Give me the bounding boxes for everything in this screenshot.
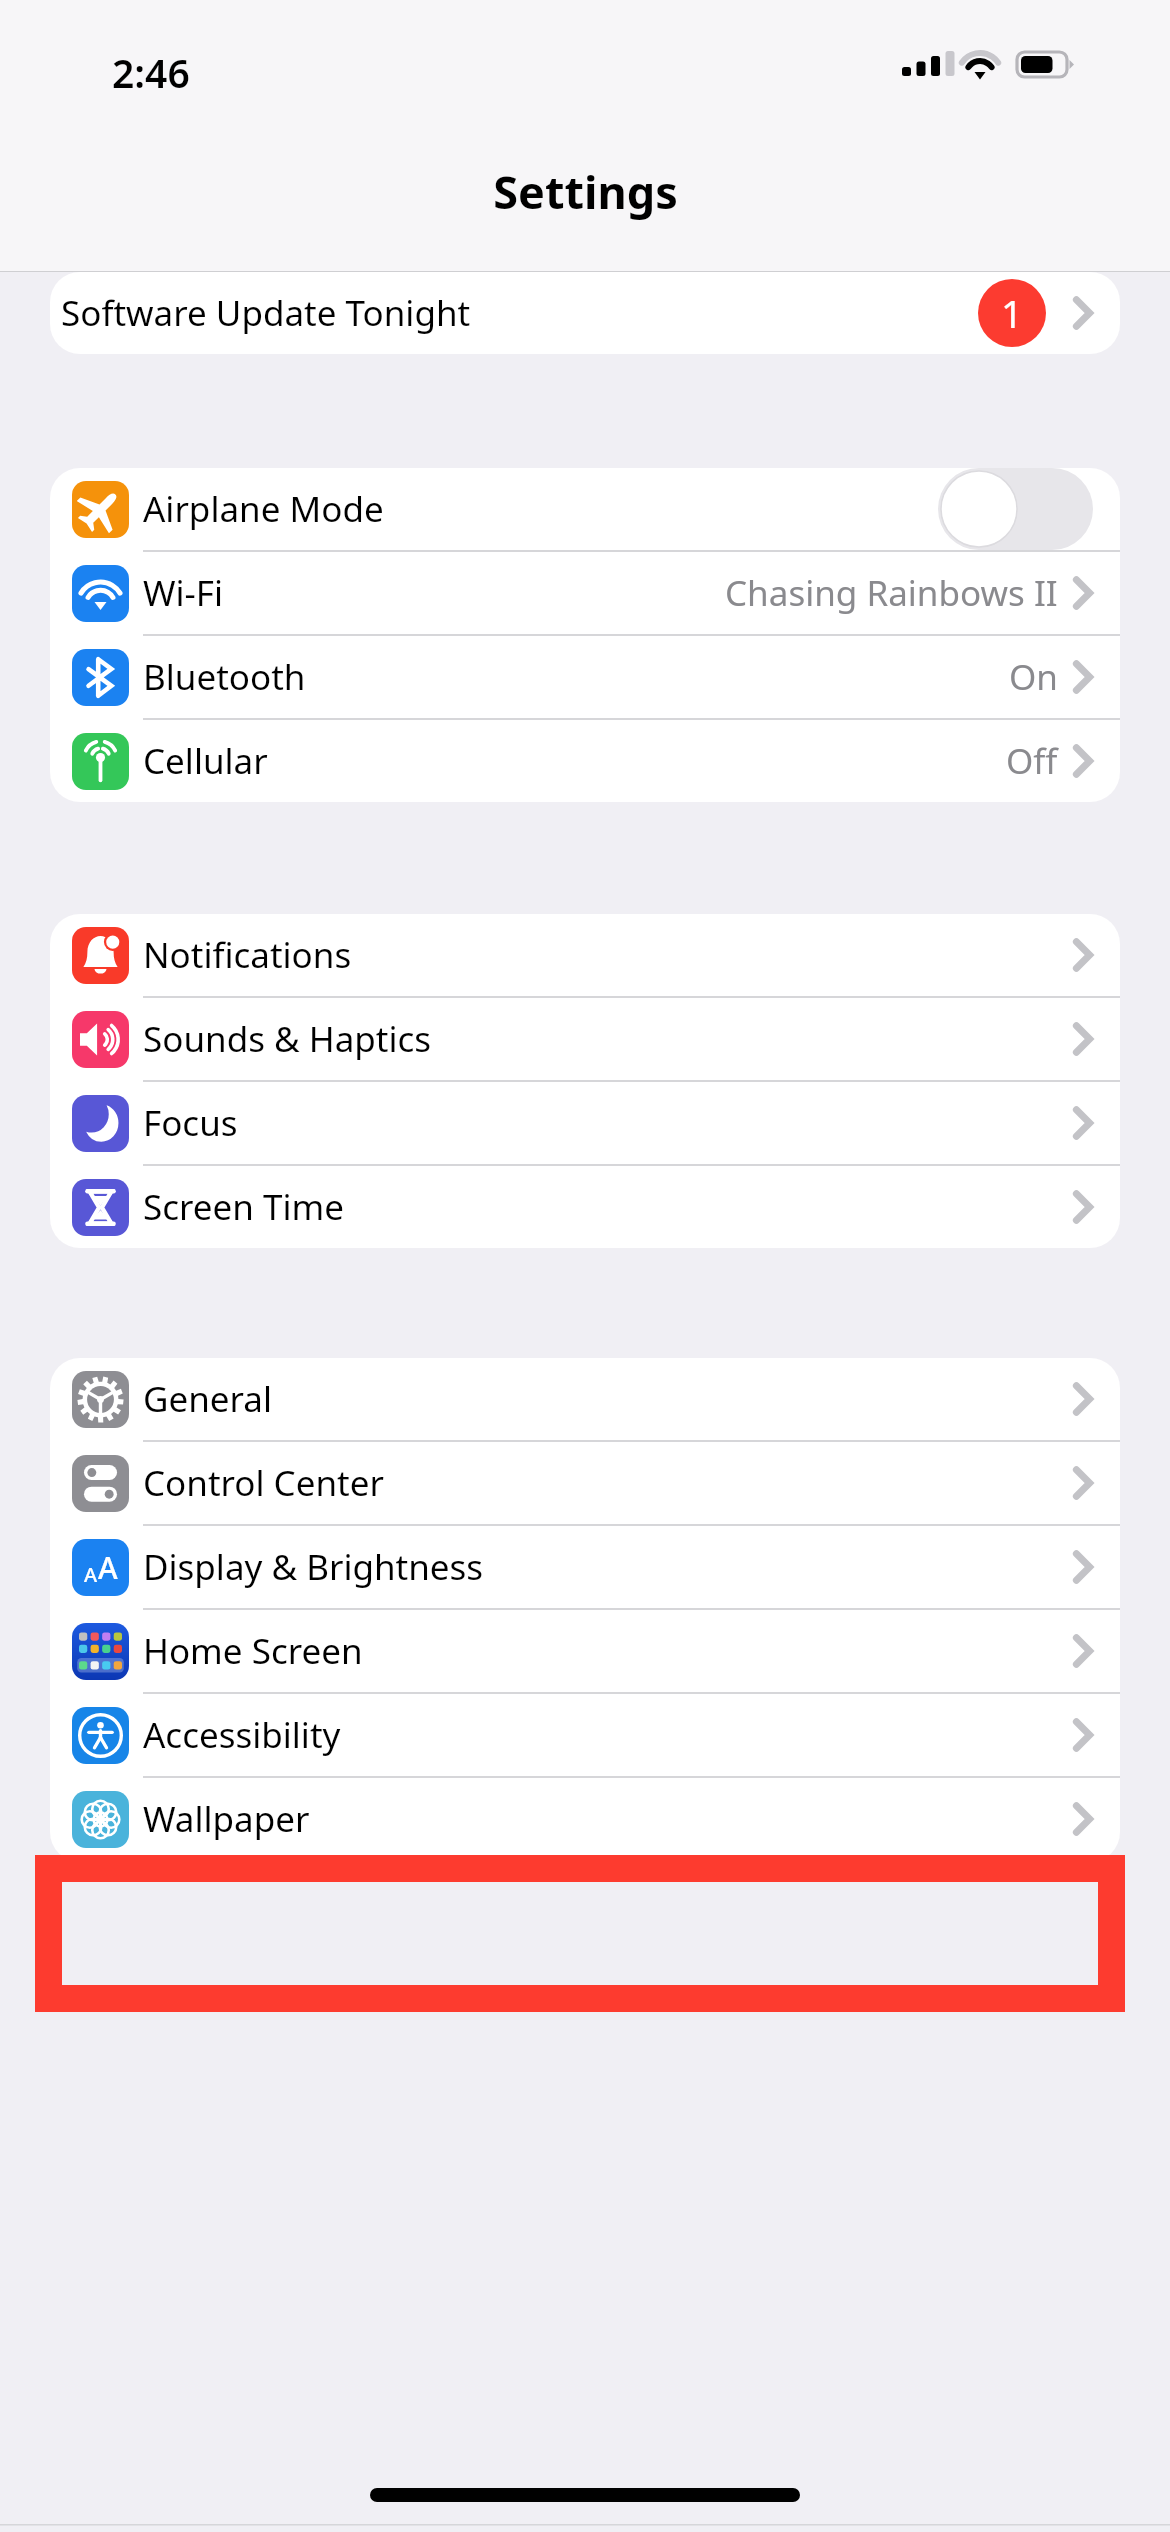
staticText: General — [143, 1375, 273, 1423]
staticText: Settings — [493, 161, 678, 222]
button[interactable]: Notifications — [50, 914, 1120, 996]
staticText: Focus — [143, 1099, 238, 1147]
button[interactable]: Wallpaper — [50, 1778, 1120, 1860]
button[interactable]: General — [50, 1358, 1120, 1440]
button[interactable]: Airplane Mode — [50, 468, 1120, 550]
staticText: Chasing Rainbows II — [725, 569, 1058, 617]
staticText: Notifications — [143, 931, 352, 979]
staticText: Home Screen — [143, 1627, 363, 1675]
staticText: On — [1009, 653, 1058, 701]
staticText: Airplane Mode — [143, 485, 384, 533]
button[interactable]: Sounds & Haptics — [50, 998, 1120, 1080]
button[interactable]: Cellular — [50, 720, 1120, 802]
button[interactable]: Home Screen — [50, 1610, 1120, 1692]
button[interactable]: Wi-Fi — [50, 552, 1120, 634]
staticText: Off — [1006, 737, 1058, 785]
staticText: Software Update Tonight — [61, 289, 471, 337]
button[interactable]: A — [50, 1526, 1120, 1608]
button[interactable]: Bluetooth — [50, 636, 1120, 718]
staticText: Accessibility — [143, 1711, 341, 1759]
button[interactable]: Software Update Tonight — [50, 272, 1120, 354]
button[interactable]: Airplane Mode toggle — [938, 468, 1093, 550]
staticText: Sounds & Haptics — [143, 1015, 432, 1063]
staticText: Wallpaper — [143, 1795, 310, 1843]
staticText: Screen Time — [143, 1183, 344, 1231]
staticText: Wi-Fi — [143, 569, 224, 617]
staticText: 1 — [1001, 287, 1023, 339]
staticText: Control Center — [143, 1459, 384, 1507]
staticText: Cellular — [143, 737, 268, 785]
staticText: A — [84, 1561, 98, 1588]
button[interactable]: Control Center — [50, 1442, 1120, 1524]
staticText: Bluetooth — [143, 653, 306, 701]
button[interactable]: Accessibility — [50, 1694, 1120, 1776]
button[interactable]: Focus — [50, 1082, 1120, 1164]
staticText: A — [98, 1547, 118, 1588]
button[interactable]: Screen Time — [50, 1166, 1120, 1248]
staticText: Display & Brightness — [143, 1543, 484, 1591]
staticText: 2:46 — [112, 46, 190, 99]
